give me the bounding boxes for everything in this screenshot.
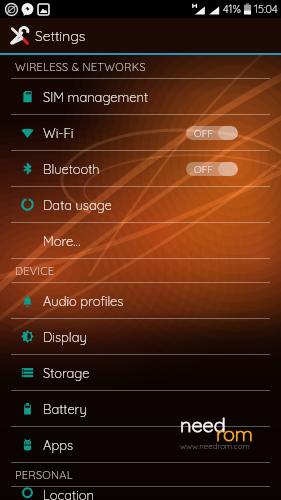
staticText: OFF — [194, 127, 214, 140]
button[interactable]: More… — [0, 223, 281, 258]
button[interactable]: Toggle off — [186, 126, 238, 140]
staticText: Audio profiles — [43, 293, 124, 309]
button[interactable]: Toggle off — [186, 162, 238, 176]
button[interactable]: Display — [0, 319, 281, 354]
staticText: Bluetooth — [43, 161, 100, 177]
staticText: Storage — [43, 365, 90, 381]
staticText: Data usage — [43, 197, 112, 213]
staticText: Settings — [35, 27, 86, 45]
button[interactable]: Apps — [0, 427, 281, 462]
staticText: 15:04 — [254, 2, 278, 16]
button[interactable]: Battery — [0, 391, 281, 426]
staticText: SIM management — [43, 89, 149, 105]
button[interactable]: Audio profiles — [0, 283, 281, 318]
button[interactable]: Location — [0, 487, 281, 500]
staticText: rom — [216, 421, 254, 446]
button[interactable]: Settings — [10, 26, 86, 45]
staticText: Display — [43, 329, 87, 345]
button[interactable]: Storage — [0, 355, 281, 390]
staticText: need — [180, 412, 226, 437]
staticText: PERSONAL — [15, 468, 73, 482]
button[interactable]: SIM management — [0, 79, 281, 114]
staticText: Location — [43, 487, 95, 500]
staticText: www.needrom.com — [180, 441, 250, 451]
staticText: OFF — [194, 163, 214, 176]
button[interactable]: Wi-Fi — [0, 115, 281, 150]
staticText: Battery — [43, 401, 87, 417]
staticText: More… — [43, 233, 81, 249]
staticText: WIRELESS & NETWORKS — [15, 60, 146, 74]
staticText: DEVICE — [15, 264, 55, 278]
staticText: 41% — [223, 2, 241, 16]
staticText: Wi-Fi — [43, 125, 74, 141]
staticText: Apps — [43, 437, 74, 453]
button[interactable]: Bluetooth — [0, 151, 281, 186]
button[interactable]: Data usage — [0, 187, 281, 222]
